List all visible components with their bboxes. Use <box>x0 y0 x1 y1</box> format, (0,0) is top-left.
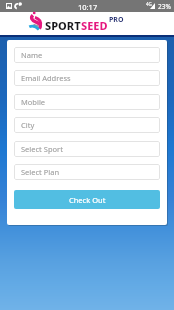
button[interactable]: Select Sport <box>14 141 160 157</box>
button[interactable]: City <box>14 117 160 133</box>
button[interactable]: Mobile <box>14 94 160 110</box>
button[interactable]: Select Plan <box>14 164 160 180</box>
staticText: Name <box>21 50 43 60</box>
staticText: Check Out <box>69 195 106 205</box>
staticText: Select Sport <box>21 144 63 154</box>
staticText: Email Address <box>21 73 71 83</box>
staticText: 4G <box>146 1 152 7</box>
staticText: 23% <box>158 2 171 11</box>
staticText: SEED <box>81 18 108 33</box>
button[interactable]: Email Address <box>14 70 160 86</box>
staticText: Select Plan <box>21 167 60 177</box>
button[interactable]: Name <box>14 47 160 63</box>
staticText: PRO <box>109 15 124 25</box>
staticText: SPORT <box>45 18 81 33</box>
button[interactable]: Check Out <box>14 190 160 209</box>
staticText: 10:17 <box>78 2 98 12</box>
staticText: City <box>21 120 35 130</box>
staticText: Mobile <box>21 97 46 107</box>
